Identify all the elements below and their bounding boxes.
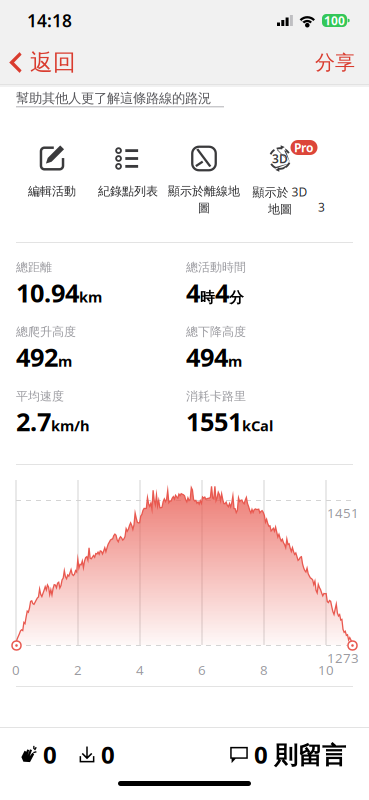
staticText: 分 bbox=[229, 288, 244, 306]
button[interactable]: 分享 bbox=[301, 40, 369, 85]
staticText: 地圖 bbox=[268, 202, 292, 217]
staticText: 顯示於 3D bbox=[252, 184, 307, 200]
staticText: 分享 bbox=[315, 50, 355, 75]
button[interactable]: 顯示於離線地 bbox=[166, 145, 242, 225]
staticText: 0 bbox=[43, 739, 57, 770]
staticText: 總活動時間 bbox=[186, 260, 246, 275]
staticText: 紀錄點列表 bbox=[98, 184, 158, 199]
staticText: km/h bbox=[51, 416, 90, 435]
staticText: 總下降高度 bbox=[186, 324, 246, 339]
staticText: 編輯活動 bbox=[28, 184, 76, 199]
staticText: 4 bbox=[136, 661, 144, 679]
button[interactable]: 0 bbox=[74, 733, 118, 776]
staticText: km bbox=[79, 287, 102, 306]
staticText: 0 bbox=[101, 739, 115, 770]
staticText: 3D bbox=[272, 150, 288, 166]
staticText: Pro bbox=[294, 139, 314, 155]
staticText: 4 bbox=[215, 276, 229, 309]
staticText: 14:18 bbox=[27, 9, 72, 32]
staticText: m bbox=[58, 351, 72, 371]
button[interactable]: 幫助其他人更了解這條路線的路況 bbox=[12, 86, 228, 111]
staticText: 4 bbox=[186, 276, 200, 309]
staticText: 1551 bbox=[186, 404, 242, 438]
staticText: 100 bbox=[324, 12, 345, 28]
staticText: 返回 bbox=[30, 49, 76, 76]
staticText: 平均速度 bbox=[16, 389, 64, 403]
button[interactable]: 0 bbox=[16, 733, 60, 776]
staticText: 圖 bbox=[198, 201, 210, 215]
staticText: kCal bbox=[242, 416, 273, 435]
staticText: m bbox=[228, 351, 242, 371]
staticText: 顯示於離線地 bbox=[168, 184, 240, 199]
staticText: 494 bbox=[186, 340, 228, 374]
staticText: 8 bbox=[260, 661, 268, 679]
staticText: 6 bbox=[198, 661, 206, 679]
staticText: 492 bbox=[16, 340, 58, 374]
staticText: 時 bbox=[200, 288, 215, 306]
staticText: 2 bbox=[74, 661, 82, 679]
staticText: 1451 bbox=[327, 504, 359, 522]
staticText: 消耗卡路里 bbox=[186, 389, 246, 403]
button[interactable]: 3D bbox=[242, 145, 318, 225]
staticText: 10 bbox=[318, 661, 334, 679]
staticText: 1273 bbox=[327, 649, 359, 667]
staticText: 0 則留言 bbox=[254, 739, 346, 770]
staticText: 0 bbox=[12, 661, 20, 679]
staticText: 總距離 bbox=[16, 260, 52, 275]
button[interactable]: 返回 bbox=[0, 40, 84, 85]
staticText: 幫助其他人更了解這條路線的路況 bbox=[16, 90, 211, 106]
staticText: 10.94 bbox=[16, 276, 79, 309]
button[interactable]: 0 則留言 bbox=[226, 733, 349, 776]
button[interactable]: 紀錄點列表 bbox=[90, 145, 166, 225]
staticText: 2.7 bbox=[16, 404, 51, 438]
staticText: 總爬升高度 bbox=[16, 324, 76, 339]
button[interactable]: 編輯活動 bbox=[14, 145, 90, 225]
staticText: 3 bbox=[318, 199, 325, 215]
